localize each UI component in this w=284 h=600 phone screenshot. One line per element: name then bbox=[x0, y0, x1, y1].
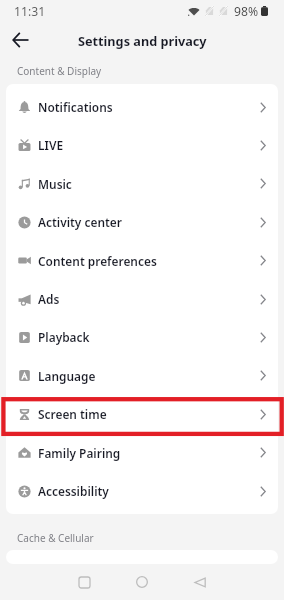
button[interactable]: Content preferences bbox=[6, 241, 278, 280]
staticText: Playback bbox=[38, 329, 90, 345]
button[interactable]: Music bbox=[6, 164, 278, 203]
staticText: Settings and privacy bbox=[78, 32, 207, 49]
button[interactable]: Activity center bbox=[6, 203, 278, 241]
staticText: Accessibility bbox=[38, 483, 109, 499]
staticText: Family Pairing bbox=[38, 445, 121, 461]
button[interactable]: Language bbox=[6, 356, 278, 395]
button[interactable]: Back bbox=[183, 565, 217, 599]
button[interactable]: Ads bbox=[6, 280, 278, 318]
staticText: Content & Display bbox=[17, 64, 102, 78]
staticText: Notifications bbox=[38, 99, 113, 115]
button[interactable]: Family Pairing bbox=[6, 433, 278, 472]
staticText: Language bbox=[38, 368, 96, 384]
staticText: Cache & Cellular bbox=[17, 531, 94, 545]
staticText: LIVE bbox=[38, 137, 64, 153]
button[interactable]: Playback bbox=[6, 318, 278, 356]
staticText: Activity center bbox=[38, 214, 122, 230]
button[interactable]: Back bbox=[5, 25, 35, 55]
button[interactable]: Screen time bbox=[6, 395, 278, 433]
button[interactable]: Home bbox=[125, 565, 159, 599]
staticText: Screen time bbox=[38, 406, 107, 422]
staticText: 11:31 bbox=[14, 3, 46, 20]
staticText: Music bbox=[38, 176, 72, 192]
button[interactable]: Notifications bbox=[6, 88, 278, 126]
staticText: Ads bbox=[38, 291, 60, 307]
staticText: Content preferences bbox=[38, 253, 157, 269]
button[interactable]: LIVE bbox=[6, 126, 278, 164]
button[interactable]: Accessibility bbox=[6, 472, 278, 510]
staticText: 98% bbox=[234, 3, 259, 20]
button[interactable]: Recents bbox=[67, 565, 101, 599]
